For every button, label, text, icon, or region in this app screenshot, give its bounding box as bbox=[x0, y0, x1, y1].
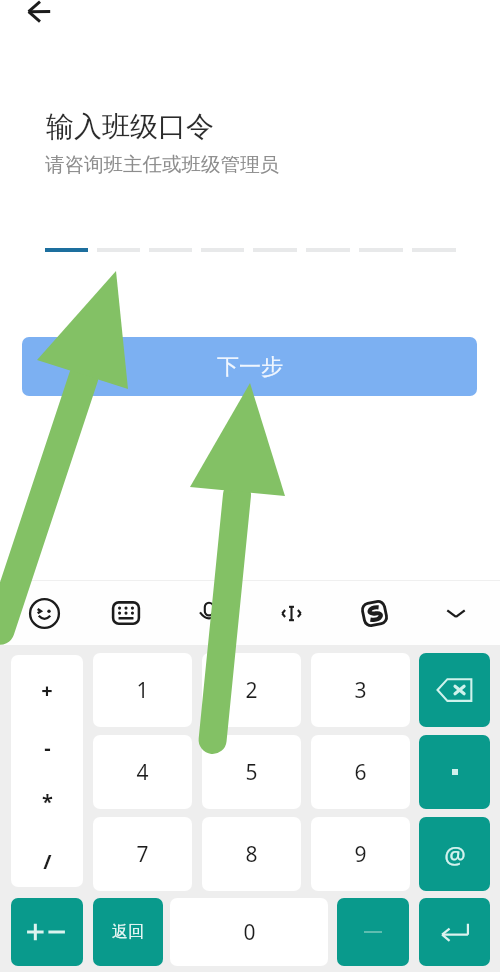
button[interactable]: Voice input bbox=[187, 591, 231, 635]
staticText: 0 bbox=[243, 918, 256, 947]
button[interactable] bbox=[419, 653, 490, 727]
button[interactable] bbox=[11, 898, 83, 966]
button[interactable] bbox=[337, 898, 409, 966]
staticText: 8 bbox=[245, 840, 258, 869]
button[interactable]: 2 bbox=[202, 653, 301, 727]
staticText: * bbox=[42, 788, 53, 815]
button[interactable]: Emoji bbox=[22, 591, 66, 635]
staticText: 2 bbox=[245, 676, 258, 705]
button[interactable]: + bbox=[11, 655, 83, 887]
button[interactable]: @ bbox=[419, 817, 490, 891]
button[interactable]: 5 bbox=[202, 735, 301, 809]
button[interactable]: Move cursor bbox=[269, 591, 313, 635]
staticText: 1 bbox=[136, 676, 149, 705]
button[interactable]: 4 bbox=[93, 735, 192, 809]
staticText: - bbox=[44, 734, 51, 761]
staticText: 3 bbox=[354, 676, 367, 705]
staticText: 4 bbox=[136, 758, 149, 787]
button[interactable]: 9 bbox=[311, 817, 410, 891]
button[interactable] bbox=[419, 898, 490, 966]
button[interactable]: 6 bbox=[311, 735, 410, 809]
button[interactable]: 7 bbox=[93, 817, 192, 891]
button[interactable]: 1 bbox=[93, 653, 192, 727]
button[interactable]: 0 bbox=[170, 898, 328, 966]
button[interactable] bbox=[419, 735, 490, 809]
staticText: / bbox=[43, 848, 52, 875]
staticText: 返回 bbox=[112, 922, 144, 942]
staticText: 5 bbox=[245, 758, 258, 787]
button[interactable]: 下一步 bbox=[22, 337, 477, 396]
staticText: @ bbox=[444, 838, 466, 871]
button[interactable]: 8 bbox=[202, 817, 301, 891]
button[interactable]: 3 bbox=[311, 653, 410, 727]
button[interactable]: Back bbox=[17, 0, 61, 34]
staticText: 下一步 bbox=[217, 353, 283, 381]
button[interactable]: Keyboard layout bbox=[104, 591, 148, 635]
staticText: 输入班级口令 bbox=[46, 109, 214, 144]
staticText: 7 bbox=[136, 840, 149, 869]
staticText: 6 bbox=[354, 758, 367, 787]
button[interactable]: Sogou input bbox=[352, 591, 396, 635]
staticText: + bbox=[41, 677, 53, 704]
staticText: 请咨询班主任或班级管理员 bbox=[45, 152, 279, 177]
button[interactable]: Hide keyboard bbox=[434, 591, 478, 635]
button[interactable]: 返回 bbox=[93, 898, 163, 966]
staticText: 9 bbox=[354, 840, 367, 869]
